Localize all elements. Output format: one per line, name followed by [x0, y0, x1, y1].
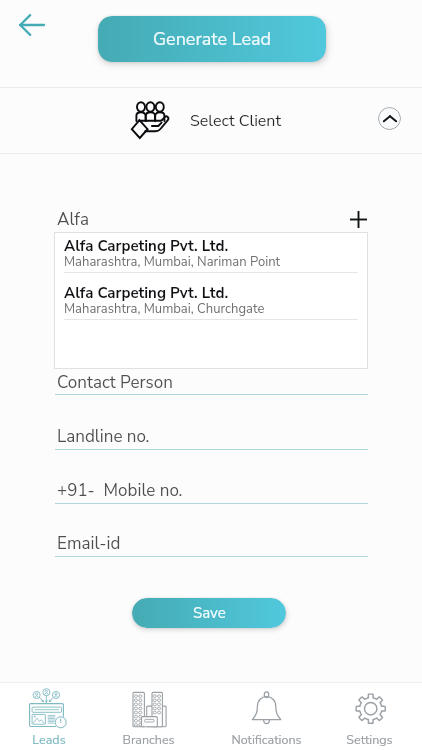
button[interactable]: [55, 363, 368, 396]
staticText: Notifications: [231, 731, 302, 748]
staticText: Save: [193, 603, 226, 623]
staticText: Maharashtra, Mumbai, Churchgate: [64, 300, 265, 318]
button[interactable]: Add client: [343, 204, 373, 234]
button[interactable]: Back: [9, 2, 55, 48]
staticText: +91- Mobile no.: [57, 479, 183, 502]
staticText: Email-id: [57, 532, 121, 555]
button[interactable]: [0, 88, 422, 153]
button[interactable]: Leads: [1, 683, 97, 750]
staticText: Maharashtra, Mumbai, Nariman Point: [64, 253, 281, 271]
button[interactable]: [55, 278, 367, 322]
button[interactable]: Notifications: [218, 683, 314, 750]
button[interactable]: Generate Lead: [98, 16, 326, 62]
staticText: Landline no.: [57, 425, 150, 448]
button[interactable]: Collapse: [378, 107, 401, 130]
staticText: Settings: [346, 731, 393, 748]
staticText: Leads: [32, 731, 66, 748]
staticText: Alfa Carpeting Pvt. Ltd.: [64, 283, 229, 303]
staticText: Contact Person: [57, 371, 173, 394]
button[interactable]: [55, 524, 368, 558]
staticText: Alfa Carpeting Pvt. Ltd.: [64, 236, 229, 256]
button[interactable]: [55, 231, 367, 275]
button[interactable]: [55, 417, 368, 451]
staticText: Generate Lead: [153, 27, 272, 52]
button[interactable]: Save: [132, 598, 286, 628]
staticText: Select Client: [190, 110, 282, 132]
button[interactable]: Settings: [321, 683, 417, 750]
button[interactable]: [55, 471, 368, 505]
button[interactable]: Branches: [100, 683, 196, 750]
staticText: Alfa: [57, 208, 89, 231]
staticText: Branches: [122, 731, 175, 748]
